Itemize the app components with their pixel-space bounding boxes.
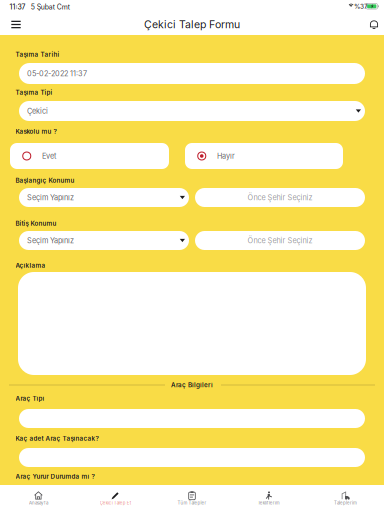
- staticText: Taleplerim: [334, 500, 357, 506]
- staticText: Kaskolu mu ?: [15, 128, 56, 135]
- button[interactable]: Seçim Yapınız: [19, 231, 189, 250]
- staticText: Seçim Yapınız: [27, 236, 74, 245]
- staticText: Taşıma Tipi: [15, 89, 52, 96]
- button[interactable]: Text field: [19, 409, 365, 428]
- button[interactable]: Tekliflerim: [230, 485, 307, 512]
- button[interactable]: Menu: [0, 14, 32, 35]
- button[interactable]: Çekici Talep Et: [77, 485, 154, 512]
- button[interactable]: Çekici: [19, 101, 365, 121]
- staticText: Araç Tipi: [15, 395, 44, 402]
- staticText: %37: [354, 2, 368, 10]
- button[interactable]: Açıklama: [18, 272, 366, 375]
- staticText: Bitiş Konumu: [15, 220, 56, 227]
- button[interactable]: 05-02-2022 11:37: [19, 63, 365, 84]
- button[interactable]: Notifications: [360, 14, 384, 35]
- staticText: 5 Şubat Cmt: [31, 3, 70, 11]
- button[interactable]: Tüm Talepler: [154, 485, 230, 512]
- button[interactable]: Text field: [19, 448, 365, 467]
- staticText: Önce Şehir Seçiniz: [247, 236, 312, 245]
- staticText: 05-02-2022 11:37: [27, 69, 87, 78]
- staticText: Hayır: [217, 152, 235, 160]
- staticText: Taşıma Tarihi: [15, 51, 59, 58]
- button[interactable]: Hayır: [185, 143, 343, 169]
- button[interactable]: Taleplerim: [307, 485, 384, 512]
- staticText: Çekici: [27, 107, 48, 115]
- button[interactable]: Önce Şehir Seçiniz: [195, 231, 365, 250]
- staticText: 11:37: [9, 3, 25, 11]
- staticText: Seçim Yapınız: [27, 193, 74, 202]
- staticText: Çekici Talep Formu: [144, 18, 240, 31]
- staticText: Çekici Talep Et: [100, 500, 131, 506]
- staticText: Araç Bilgileri: [171, 381, 213, 389]
- staticText: Açıklama: [15, 262, 45, 269]
- button[interactable]: Önce Şehir Seçiniz: [195, 188, 365, 207]
- staticText: Önce Şehir Seçiniz: [247, 193, 312, 202]
- button[interactable]: Evet: [10, 143, 169, 169]
- staticText: Kaç adet Araç Taşınacak?: [15, 435, 98, 442]
- staticText: Araç Yürür Durumda mı ?: [15, 473, 94, 480]
- button[interactable]: Anasayfa: [0, 485, 77, 512]
- staticText: Tekliflerim: [258, 500, 280, 506]
- staticText: Anasayfa: [29, 500, 48, 506]
- staticText: Başlangıç Konumu: [15, 177, 74, 184]
- staticText: Tüm Talepler: [177, 500, 206, 506]
- button[interactable]: Seçim Yapınız: [19, 188, 189, 207]
- staticText: Evet: [42, 152, 56, 160]
